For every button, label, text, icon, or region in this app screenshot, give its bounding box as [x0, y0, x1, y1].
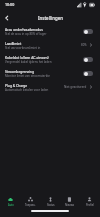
button[interactable]: Nieuws: [60, 197, 79, 207]
staticText: Laadlimiet: [5, 41, 22, 45]
staticText: 80%: [81, 43, 87, 47]
staticText: Profiel: [86, 203, 94, 207]
staticText: Stel de accu in op 80% of lager: [5, 32, 47, 36]
staticText: Accu onderhoudsmodus: [5, 27, 43, 31]
staticText: Kabelslot (alleen AC-stroom): [5, 55, 49, 59]
staticText: Stroombegrenzing: [5, 69, 34, 73]
staticText: Nieuws: [65, 203, 74, 207]
staticText: 10:00: [5, 2, 15, 7]
staticText: Auto: [8, 203, 14, 207]
staticText: Toepass.: [25, 203, 36, 207]
button[interactable]: Kabelslot (alleen AC-stroom): [83, 57, 93, 62]
button[interactable]: Stroombegrenzing: [0, 66, 100, 80]
button[interactable]: Accu onderhoudsmodus: [83, 29, 93, 34]
staticText: Vergrendel kabel tijdens het laden: [5, 60, 52, 64]
staticText: Monitor limiet van stroomsterkte: [5, 74, 50, 78]
button[interactable]: Profiel: [80, 197, 99, 207]
button[interactable]: Terug: [1, 12, 13, 23]
staticText: Status: [47, 203, 55, 207]
staticText: Plug & Charge: [5, 83, 28, 87]
button[interactable]: Laadlimiet: [0, 38, 100, 52]
button[interactable]: Plug & Charge: [0, 80, 100, 94]
button[interactable]: Auto: [1, 197, 20, 207]
staticText: Instellingen: [38, 15, 63, 21]
button[interactable]: Status: [41, 197, 60, 207]
button[interactable]: Accu onderhoudsmodus: [0, 24, 100, 38]
button[interactable]: Kabelslot (alleen AC-stroom): [0, 52, 100, 66]
button[interactable]: Stroombegrenzing: [83, 71, 93, 76]
staticText: Stel uw voorkeurslimiet in: [5, 46, 41, 50]
staticText: Automatisch betalen voor laden: [5, 88, 49, 92]
staticText: Niet geactiveerd: [64, 85, 87, 89]
button[interactable]: Toepass.: [21, 197, 40, 207]
